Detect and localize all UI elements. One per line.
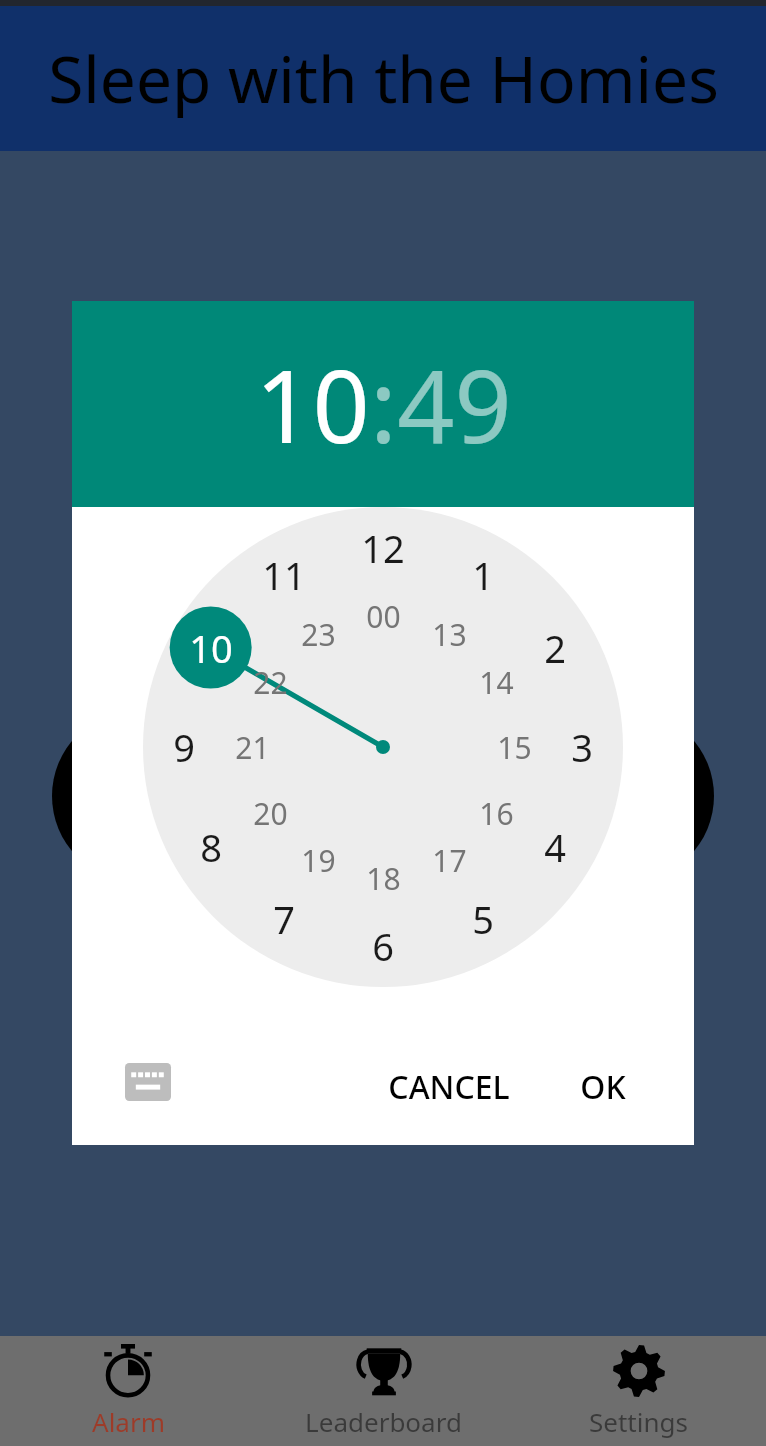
button[interactable]: 9	[150, 717, 218, 777]
staticText: 10	[189, 622, 233, 674]
button[interactable]: 10	[255, 336, 370, 472]
button[interactable]: 15	[482, 721, 546, 773]
staticText: 2	[544, 622, 566, 674]
staticText: 17	[432, 840, 467, 881]
button[interactable]: 22	[238, 656, 302, 708]
staticText: :	[370, 336, 397, 472]
button[interactable]: 8	[177, 817, 245, 877]
button[interactable]: 19	[286, 834, 350, 886]
button[interactable]: Leaderboard	[256, 1336, 511, 1446]
staticText: 3	[571, 721, 593, 773]
staticText: 6	[372, 920, 394, 972]
button[interactable]: 13	[417, 608, 481, 660]
button[interactable]: CANCEL	[388, 1065, 510, 1109]
button[interactable]: 5	[449, 889, 517, 949]
staticText: 21	[235, 727, 270, 768]
button[interactable]: 14	[464, 656, 528, 708]
button[interactable]: 12	[349, 518, 417, 578]
staticText: 23	[301, 614, 336, 655]
button[interactable]: 7	[250, 889, 318, 949]
staticText: 00	[366, 596, 401, 637]
staticText: Sleep with the Homies	[48, 35, 719, 122]
staticText: 10	[255, 336, 370, 472]
staticText: Alarm	[92, 1404, 165, 1439]
button[interactable]: 16	[464, 787, 528, 839]
staticText: 19	[301, 840, 336, 881]
staticText: 18	[366, 858, 401, 899]
staticText: 15	[497, 727, 532, 768]
button[interactable]: Settings	[511, 1336, 766, 1446]
button[interactable]: 23	[286, 608, 350, 660]
button[interactable]: 1	[449, 545, 517, 605]
staticText: 20	[253, 793, 288, 834]
staticText: 5	[472, 893, 494, 945]
button[interactable]: 2	[521, 618, 589, 678]
staticText: Leaderboard	[305, 1404, 462, 1439]
staticText: Settings	[589, 1404, 688, 1439]
button[interactable]: 11	[250, 545, 318, 605]
staticText: OK	[580, 1065, 626, 1109]
staticText: 13	[432, 614, 467, 655]
staticText: 8	[200, 821, 222, 873]
staticText: 12	[361, 522, 405, 574]
button[interactable]: 21	[220, 721, 284, 773]
button[interactable]: 20	[238, 787, 302, 839]
staticText: 49	[397, 336, 512, 472]
button[interactable]: 6	[349, 916, 417, 976]
staticText: 22	[253, 662, 288, 703]
button[interactable]: 18	[351, 852, 415, 904]
button[interactable]: 10	[177, 618, 245, 678]
staticText: 1	[472, 549, 494, 601]
button[interactable]: Switch to text input	[125, 1063, 171, 1101]
button[interactable]: OK	[580, 1065, 626, 1109]
button[interactable]: 3	[548, 717, 616, 777]
staticText: 11	[262, 549, 306, 601]
staticText: 7	[273, 893, 295, 945]
button[interactable]: 4	[521, 817, 589, 877]
staticText: CANCEL	[388, 1065, 510, 1109]
button[interactable]: 00	[351, 590, 415, 642]
staticText: 9	[173, 721, 195, 773]
button[interactable]: Alarm	[0, 1336, 256, 1446]
staticText: 14	[479, 662, 514, 703]
staticText: 4	[544, 821, 566, 873]
button[interactable]: 17	[417, 834, 481, 886]
button[interactable]: 49	[397, 336, 512, 472]
staticText: 16	[479, 793, 514, 834]
